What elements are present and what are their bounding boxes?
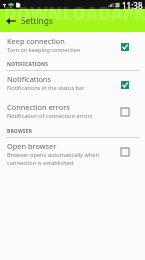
button[interactable]: Toggle bbox=[119, 106, 131, 118]
staticText: Browser opens automatically when bbox=[7, 151, 99, 159]
staticText: Notification of connection errors bbox=[7, 112, 93, 120]
staticText: Turn on keeping connection bbox=[7, 46, 81, 54]
staticText: 11:38 bbox=[122, 0, 143, 9]
staticText: BROWSER bbox=[7, 128, 33, 135]
staticText: Notifications in the status bar bbox=[7, 84, 85, 92]
staticText: Keep connection bbox=[7, 36, 65, 46]
staticText: connection is established bbox=[7, 159, 74, 167]
staticText: Connection errors bbox=[7, 102, 70, 112]
staticText: DOWNLOADAPK bbox=[4, 2, 145, 25]
staticText: Open browser bbox=[7, 141, 57, 151]
button[interactable]: Toggle bbox=[119, 41, 131, 53]
button[interactable]: Toggle bbox=[119, 146, 131, 158]
button[interactable]: Toggle bbox=[119, 79, 131, 91]
button[interactable]: Back bbox=[1, 11, 21, 31]
staticText: Notifications bbox=[7, 74, 51, 84]
staticText: NOTIFICATIONS bbox=[7, 61, 49, 68]
staticText: Settings bbox=[21, 15, 53, 26]
